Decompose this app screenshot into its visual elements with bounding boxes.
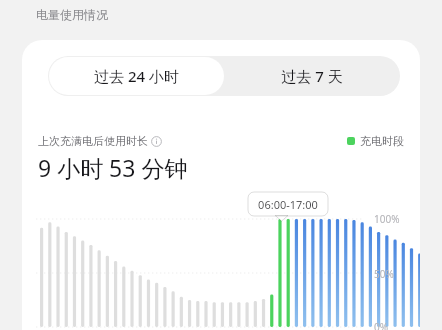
staticText: 9 小时 53 分钟 [38,152,188,183]
staticText: 过去 7 天 [281,66,343,86]
button[interactable]: 说明 [151,136,162,147]
staticText: 100% [374,212,400,226]
staticText: 0% [374,320,389,330]
staticText: 过去 24 小时 [94,66,179,86]
button[interactable]: 过去 7 天 [224,57,399,95]
staticText: 电量使用情况 [36,7,108,22]
staticText: 上次充满电后使用时长 [38,134,148,148]
button[interactable]: 过去 24 小时 [49,57,224,95]
staticText: 50% [374,267,394,281]
staticText: 充电时段 [360,134,404,148]
staticText: 06:00-17:00 [248,197,328,212]
